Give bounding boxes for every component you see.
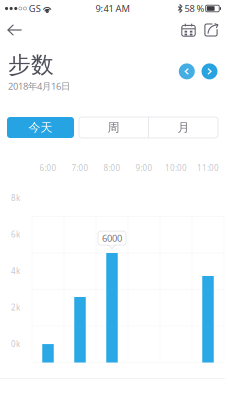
staticText: 7:00 bbox=[71, 163, 88, 173]
staticText: 2k bbox=[11, 302, 20, 313]
staticText: 月 bbox=[177, 120, 189, 135]
staticText: 周 bbox=[107, 120, 119, 135]
staticText: 10:00 bbox=[165, 163, 187, 173]
button[interactable]: 月 bbox=[149, 117, 218, 138]
staticText: 步数 bbox=[8, 51, 54, 79]
button[interactable]: Back bbox=[1, 20, 28, 40]
button[interactable]: Previous day bbox=[179, 63, 195, 79]
staticText: 6000 bbox=[102, 232, 122, 244]
staticText: 6k bbox=[11, 229, 20, 240]
button[interactable]: Next day bbox=[201, 63, 217, 79]
staticText: 0k bbox=[11, 339, 20, 349]
staticText: 9:00 bbox=[135, 163, 152, 173]
button[interactable]: Share bbox=[200, 20, 222, 40]
staticText: 2018年4月16日 bbox=[8, 80, 70, 92]
button[interactable]: 今天 bbox=[7, 117, 74, 138]
staticText: 8k bbox=[11, 193, 20, 203]
staticText: 11:00 bbox=[197, 163, 219, 173]
button[interactable]: 周 bbox=[79, 117, 148, 138]
staticText: GS bbox=[29, 2, 41, 15]
staticText: 4k bbox=[11, 266, 20, 276]
staticText: 8:00 bbox=[103, 163, 120, 173]
button[interactable]: Calendar bbox=[177, 20, 200, 40]
staticText: 58 % bbox=[184, 2, 204, 15]
staticText: 9:41 AM bbox=[95, 2, 129, 15]
staticText: 今天 bbox=[28, 120, 52, 135]
staticText: 6:00 bbox=[39, 163, 56, 173]
